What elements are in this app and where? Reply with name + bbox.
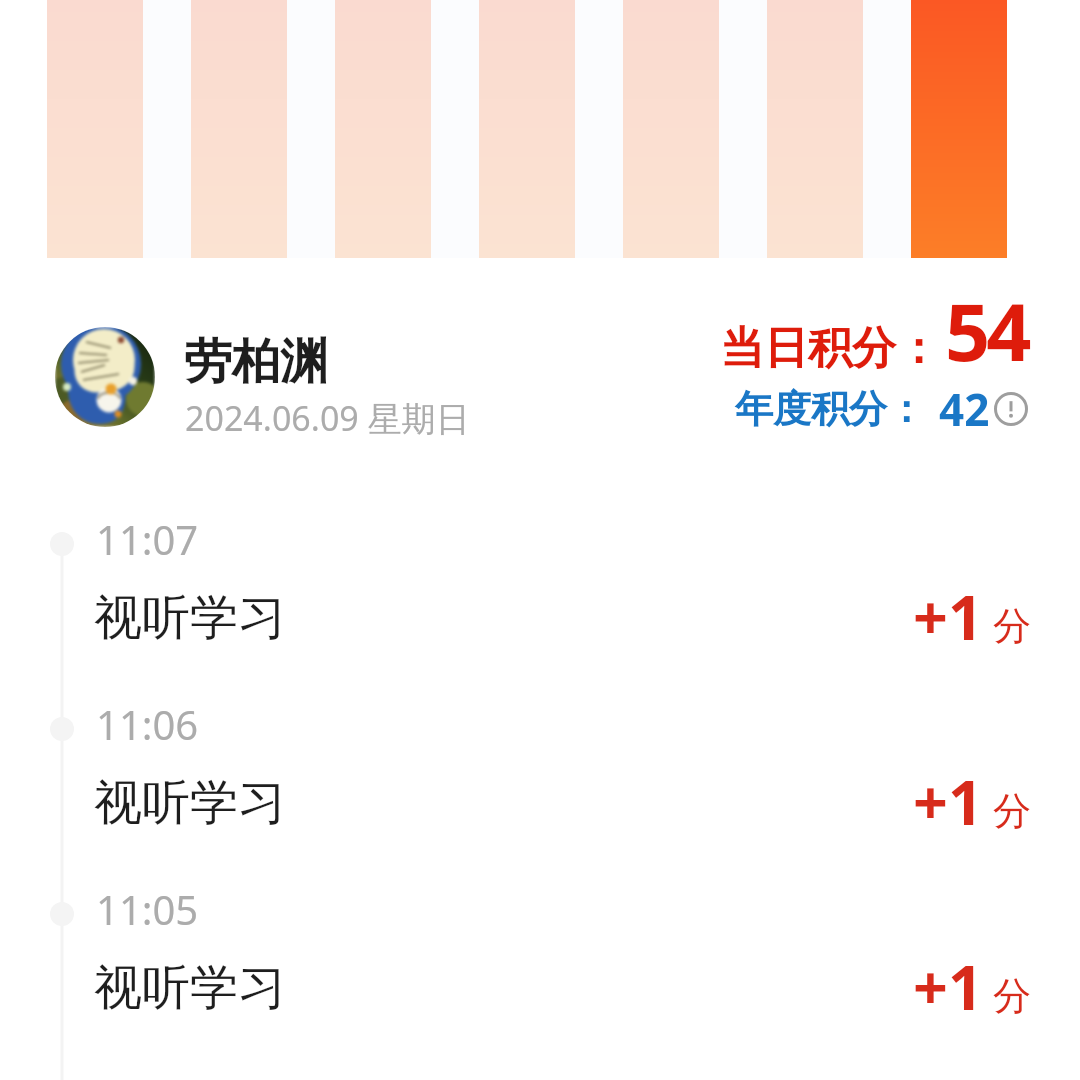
button[interactable]: 11:05: [0, 880, 1080, 1065]
staticText: 劳柏渊: [184, 332, 328, 392]
button[interactable]: 积分柱状图: [0, 0, 1080, 258]
button[interactable]: 11:06: [0, 695, 1080, 880]
staticText: 分: [993, 972, 1031, 1020]
staticText: 视听学习: [94, 773, 286, 833]
staticText: 11:06: [96, 697, 199, 751]
staticText: 2024.06.09 星期日: [185, 395, 470, 441]
button[interactable]: 11:07: [0, 510, 1080, 695]
button[interactable]: 用户头像: [55, 327, 155, 427]
staticText: +1: [913, 760, 983, 843]
staticText: 分: [993, 787, 1031, 835]
button[interactable]: 劳柏渊: [182, 322, 512, 442]
staticText: 11:07: [96, 512, 199, 566]
staticText: 视听学习: [94, 958, 286, 1018]
staticText: 42: [939, 379, 990, 439]
staticText: 11:05: [96, 882, 199, 936]
staticText: 54: [945, 277, 1028, 385]
button[interactable]: 当日积分：: [597, 277, 1028, 429]
button[interactable]: 积分说明: [994, 392, 1028, 426]
staticText: +1: [913, 945, 983, 1028]
staticText: 年度积分：: [735, 385, 925, 433]
staticText: 视听学习: [94, 588, 286, 648]
staticText: 分: [993, 602, 1031, 650]
staticText: +1: [913, 575, 983, 658]
staticText: 当日积分：: [720, 321, 940, 376]
